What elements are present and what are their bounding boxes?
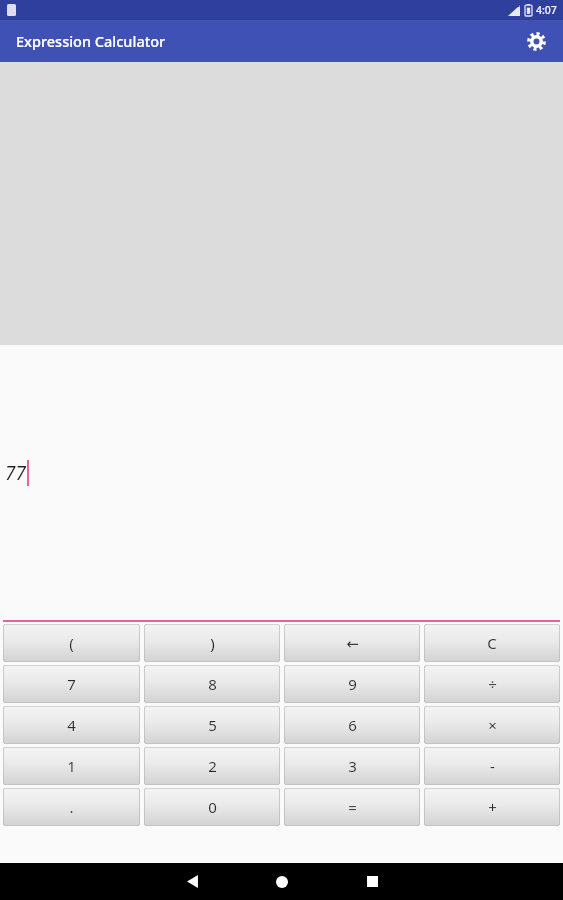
staticText: ) bbox=[210, 633, 215, 653]
staticText: 5 bbox=[208, 715, 217, 735]
button[interactable]: 6 bbox=[284, 706, 420, 744]
button[interactable]: ← bbox=[284, 624, 420, 662]
staticText: ( bbox=[69, 633, 74, 653]
staticText: 9 bbox=[348, 674, 357, 694]
button[interactable]: 8 bbox=[144, 665, 280, 703]
staticText: . bbox=[69, 797, 74, 817]
button[interactable]: 2 bbox=[144, 747, 280, 785]
button[interactable]: Settings bbox=[519, 24, 553, 58]
button[interactable]: Back bbox=[161, 863, 223, 900]
staticText: 0 bbox=[208, 797, 217, 817]
staticText: 3 bbox=[348, 756, 357, 776]
staticText: C bbox=[487, 633, 497, 653]
staticText: 6 bbox=[348, 715, 357, 735]
staticText: ← bbox=[346, 635, 359, 652]
button[interactable]: ( bbox=[3, 624, 140, 662]
staticText: 7 bbox=[67, 674, 76, 694]
staticText: + bbox=[488, 797, 497, 817]
button[interactable]: 0 bbox=[144, 788, 280, 826]
button[interactable]: ÷ bbox=[424, 665, 560, 703]
button[interactable]: Recent apps bbox=[341, 863, 403, 900]
button[interactable]: C bbox=[424, 624, 560, 662]
button[interactable]: ) bbox=[144, 624, 280, 662]
staticText: 4 bbox=[67, 715, 76, 735]
button[interactable]: . bbox=[3, 788, 140, 826]
button[interactable]: Home bbox=[251, 863, 313, 900]
staticText: - bbox=[490, 756, 495, 776]
button[interactable]: 9 bbox=[284, 665, 420, 703]
staticText: 8 bbox=[208, 674, 217, 694]
button[interactable]: - bbox=[424, 747, 560, 785]
staticText: = bbox=[348, 797, 357, 817]
button[interactable]: + bbox=[424, 788, 560, 826]
staticText: 4:07 bbox=[536, 3, 557, 17]
button[interactable]: 5 bbox=[144, 706, 280, 744]
staticText: ÷ bbox=[488, 674, 497, 694]
button[interactable]: 4 bbox=[3, 706, 140, 744]
staticText: 77 bbox=[5, 460, 26, 486]
staticText: × bbox=[488, 715, 497, 735]
button[interactable]: 1 bbox=[3, 747, 140, 785]
button[interactable]: = bbox=[284, 788, 420, 826]
staticText: 2 bbox=[208, 756, 217, 776]
staticText: 1 bbox=[67, 756, 76, 776]
button[interactable]: 7 bbox=[3, 665, 140, 703]
staticText: Expression Calculator bbox=[16, 31, 166, 51]
button[interactable]: × bbox=[424, 706, 560, 744]
button[interactable]: 3 bbox=[284, 747, 420, 785]
